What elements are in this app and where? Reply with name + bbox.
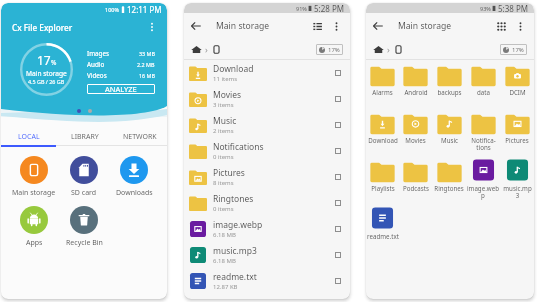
- staticText: 2 items: [213, 127, 234, 135]
- staticText: Ringtones: [213, 193, 254, 205]
- button[interactable]: DCIM: [500, 62, 534, 96]
- staticText: 17: [37, 52, 51, 68]
- staticText: Alarms: [372, 88, 393, 96]
- staticText: music.mp3: [213, 245, 257, 257]
- staticText: Cx File Explorer: [12, 22, 73, 33]
- staticText: 17%: [328, 46, 340, 54]
- staticText: 5:28 PM: [314, 3, 345, 13]
- button[interactable]: SD card: [59, 156, 109, 198]
- button[interactable]: Back: [371, 19, 385, 33]
- staticText: 100%: [105, 6, 120, 13]
- button[interactable]: Pictures: [188, 164, 341, 190]
- button[interactable]: More options: [514, 20, 527, 33]
- staticText: LOCAL: [18, 132, 40, 142]
- button[interactable]: LIBRARY: [57, 128, 112, 145]
- button[interactable]: Playlists: [366, 158, 399, 192]
- button[interactable]: readme.txt: [366, 206, 399, 240]
- staticText: 8 items: [213, 179, 234, 187]
- button[interactable]: NETWORK: [112, 128, 167, 145]
- staticText: ANALYZE: [105, 84, 137, 94]
- staticText: Android: [404, 88, 428, 96]
- button[interactable]: Podcasts: [399, 158, 432, 192]
- staticText: Playlists: [371, 184, 395, 192]
- staticText: music.mp 3: [503, 184, 532, 200]
- button[interactable]: Music: [432, 110, 466, 144]
- button[interactable]: LOCAL: [1, 128, 57, 145]
- staticText: 5:38 PM: [498, 3, 529, 13]
- staticText: Download: [213, 63, 254, 75]
- staticText: Music: [213, 115, 237, 127]
- staticText: ›: [205, 43, 208, 55]
- staticText: 6.18 MB: [213, 231, 236, 239]
- button[interactable]: Main storage: [9, 156, 59, 198]
- staticText: Recycle Bin: [66, 238, 103, 248]
- button[interactable]: Pictures: [500, 110, 534, 144]
- staticText: 91%: [296, 5, 307, 12]
- button[interactable]: music.mp 3: [500, 158, 534, 200]
- staticText: 93%: [480, 5, 491, 12]
- staticText: data: [477, 88, 490, 96]
- button[interactable]: 17%: [500, 44, 527, 55]
- staticText: Pictures: [505, 136, 529, 144]
- staticText: Podcasts: [403, 184, 429, 192]
- staticText: 16 MB: [139, 72, 155, 79]
- staticText: 6.18 MB: [213, 257, 236, 265]
- staticText: SD card: [71, 188, 97, 198]
- button[interactable]: Recycle Bin: [59, 206, 109, 248]
- staticText: LIBRARY: [71, 132, 99, 142]
- button[interactable]: Movies: [399, 110, 432, 144]
- button[interactable]: Apps: [9, 206, 59, 248]
- staticText: Notifications: [213, 141, 264, 153]
- staticText: 4.5 GB / 26 GB: [28, 78, 65, 85]
- button[interactable]: 17%: [316, 44, 343, 55]
- button[interactable]: readme.txt: [188, 268, 341, 294]
- staticText: Main storage: [216, 20, 270, 32]
- button[interactable]: Grid view: [495, 20, 508, 33]
- staticText: 12:11 PM: [127, 4, 162, 15]
- button[interactable]: Ringtones: [188, 190, 341, 216]
- staticText: Ringtones: [434, 184, 464, 192]
- staticText: Audio: [87, 60, 105, 69]
- staticText: Music: [441, 136, 458, 144]
- button[interactable]: music.mp3: [188, 242, 341, 268]
- staticText: Notifica- tions: [471, 136, 496, 152]
- button[interactable]: Android: [399, 62, 432, 96]
- staticText: Apps: [26, 238, 43, 248]
- button[interactable]: data: [466, 62, 500, 96]
- staticText: 0 items: [213, 153, 234, 161]
- staticText: 11 items: [213, 75, 238, 83]
- staticText: 12.87 KB: [213, 283, 238, 291]
- button[interactable]: Downloads: [109, 156, 159, 198]
- button[interactable]: Movies: [188, 86, 341, 112]
- button[interactable]: Music: [188, 112, 341, 138]
- staticText: Downloads: [116, 188, 153, 198]
- staticText: DCIM: [509, 88, 526, 96]
- button[interactable]: More options: [330, 20, 343, 33]
- button[interactable]: Ringtones: [432, 158, 466, 192]
- staticText: readme.txt: [213, 271, 257, 283]
- button[interactable]: Alarms: [366, 62, 399, 96]
- button[interactable]: backups: [432, 62, 466, 96]
- button[interactable]: ANALYZE: [87, 84, 155, 94]
- button[interactable]: Home: [373, 44, 384, 55]
- staticText: 2.2 MB: [137, 61, 155, 68]
- staticText: backups: [437, 88, 462, 96]
- staticText: Main storage: [12, 188, 56, 198]
- button[interactable]: Download: [366, 110, 399, 144]
- staticText: ›: [387, 43, 390, 55]
- button[interactable]: image.webp: [188, 216, 341, 242]
- button[interactable]: List view: [311, 20, 324, 33]
- button[interactable]: More options: [145, 20, 159, 34]
- staticText: readme.txt: [367, 232, 399, 240]
- button[interactable]: Notifica- tions: [466, 110, 500, 152]
- button[interactable]: Home: [191, 44, 202, 55]
- button[interactable]: Download: [188, 60, 341, 86]
- staticText: Pictures: [213, 167, 245, 179]
- staticText: %: [51, 58, 57, 67]
- staticText: Download: [368, 136, 398, 144]
- button[interactable]: Back: [189, 19, 203, 33]
- staticText: image.web p: [467, 184, 499, 200]
- button[interactable]: Notifications: [188, 138, 341, 164]
- staticText: 17%: [512, 46, 524, 54]
- button[interactable]: image.web p: [466, 158, 500, 200]
